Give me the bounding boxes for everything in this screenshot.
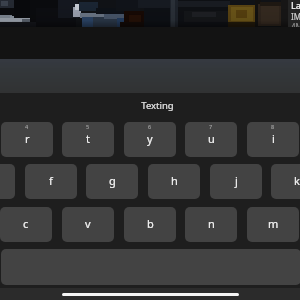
staticText: La [291,0,300,11]
button[interactable]: f [25,164,77,199]
button[interactable]: Notification [288,0,300,27]
staticText: Texting [141,99,174,112]
staticText: m [268,216,279,231]
button[interactable]: j [210,164,262,199]
button[interactable]: 8 [247,122,299,157]
button[interactable]: n [185,207,237,242]
staticText: IM [291,11,300,22]
button[interactable]: Texting [0,93,300,122]
button[interactable]: b [124,207,176,242]
staticText: 6 [148,123,152,130]
staticText: b [147,216,154,231]
button[interactable]: c [0,207,52,242]
button[interactable]: m [247,207,299,242]
staticText: f [49,173,53,188]
staticText: 4 [25,123,29,130]
staticText: 7 [209,123,213,130]
staticText: c [23,216,29,231]
staticText: y [147,131,153,146]
button[interactable]: 5 [62,122,114,157]
button[interactable]: h [148,164,200,199]
button[interactable]: v [62,207,114,242]
button[interactable]: 7 [185,122,237,157]
staticText: 4M [291,21,300,32]
staticText: i [272,131,275,146]
staticText: k [294,173,300,188]
button[interactable]: g [86,164,138,199]
staticText: g [109,173,116,188]
staticText: r [25,131,30,146]
button[interactable]: 4 [1,122,53,157]
staticText: h [171,173,178,188]
staticText: n [208,216,215,231]
staticText: u [208,131,215,146]
button[interactable]: 6 [124,122,176,157]
button[interactable] [0,164,15,199]
button[interactable]: k [271,164,300,199]
staticText: j [235,173,238,188]
staticText: 8 [271,123,275,130]
staticText: 5 [86,123,90,130]
staticText: v [85,216,91,231]
staticText: t [86,131,90,146]
